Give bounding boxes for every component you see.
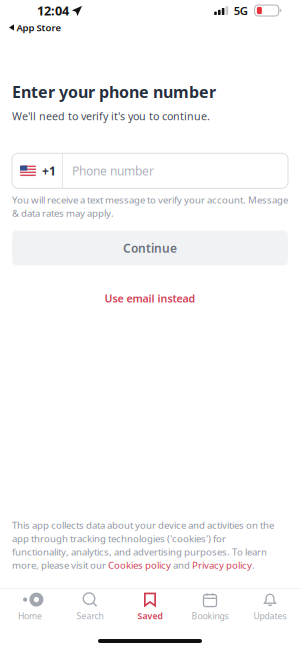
staticText: and bbox=[171, 558, 192, 571]
button[interactable]: +1 bbox=[12, 153, 288, 188]
staticText: functionality, analytics, and advertisin… bbox=[12, 545, 267, 558]
staticText: Saved bbox=[137, 610, 162, 622]
staticText: This app collects data about your device… bbox=[12, 519, 274, 532]
button[interactable]: Home bbox=[0, 589, 60, 628]
button[interactable]: Search bbox=[60, 589, 120, 628]
button[interactable]: Bookings bbox=[180, 589, 240, 628]
button[interactable]: Privacy policy bbox=[192, 558, 252, 571]
staticText: Cookies policy bbox=[108, 558, 171, 571]
staticText: You will receive a text message to verif… bbox=[12, 193, 288, 219]
staticText: Enter your phone number bbox=[12, 81, 216, 103]
staticText: Bookings bbox=[191, 610, 228, 622]
staticText: Home bbox=[18, 610, 42, 622]
staticText: Phone number bbox=[72, 163, 154, 179]
button[interactable]: Updates bbox=[240, 589, 300, 628]
button[interactable]: Cookies policy bbox=[108, 558, 171, 571]
staticText: app through tracking technologies ('cook… bbox=[12, 532, 226, 545]
staticText: Continue bbox=[123, 240, 177, 256]
staticText: Updates bbox=[253, 610, 286, 622]
staticText: 12:04 bbox=[37, 2, 69, 19]
button[interactable]: Saved bbox=[120, 589, 180, 628]
staticText: +1 bbox=[42, 163, 56, 179]
staticText: Use email instead bbox=[104, 291, 195, 306]
staticText: Search bbox=[76, 610, 103, 622]
staticText: Privacy policy bbox=[192, 558, 252, 571]
staticText: We'll need to verify it's you to continu… bbox=[12, 109, 210, 123]
button[interactable]: Continue bbox=[12, 230, 288, 265]
staticText: more, please visit our bbox=[12, 558, 108, 571]
button[interactable]: Use email instead bbox=[12, 292, 288, 304]
staticText: . bbox=[252, 558, 255, 571]
staticText: 5G bbox=[234, 3, 248, 18]
staticText: App Store bbox=[16, 21, 61, 34]
